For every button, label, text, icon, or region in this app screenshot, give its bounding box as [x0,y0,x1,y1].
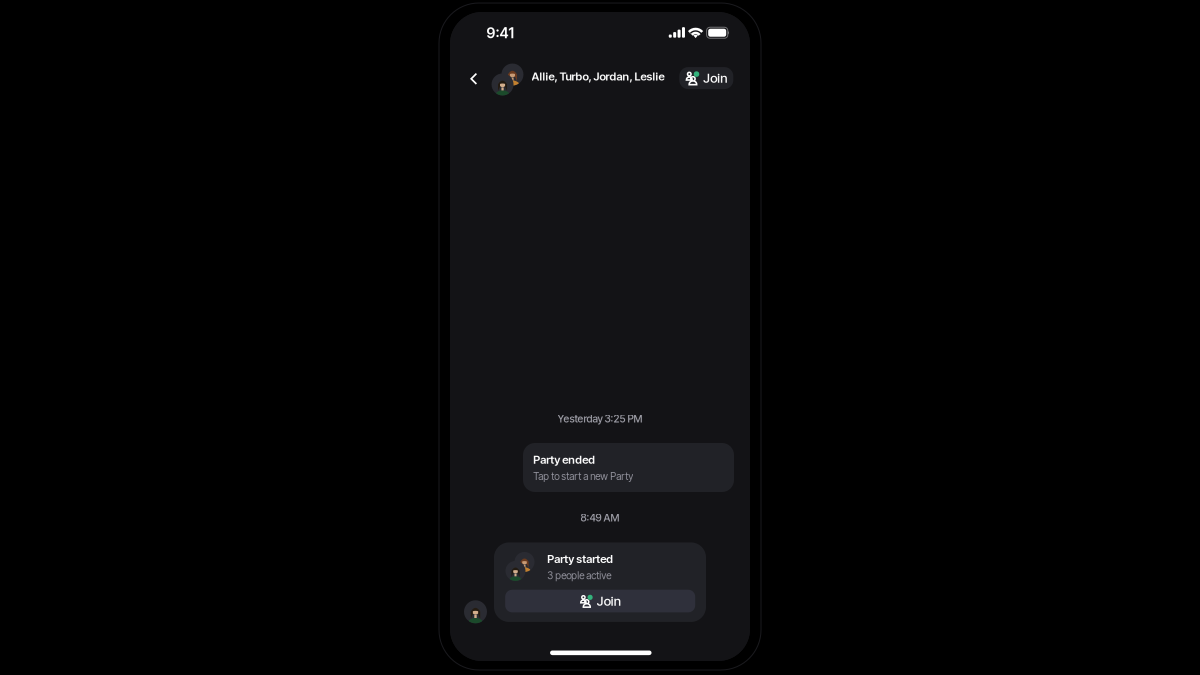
button[interactable]: Join [505,590,695,612]
staticText: Join [703,70,727,86]
staticText: Party started [547,552,613,566]
staticText: Allie, Turbo, Jordan, Leslie [532,70,665,83]
button[interactable]: Join [679,67,733,89]
staticText: Yesterday 3:25 PM [557,412,642,425]
staticText: Join [597,593,621,609]
button[interactable]: Party ended [523,443,734,492]
button[interactable]: Back [461,64,487,94]
staticText: 9:41 [486,24,514,42]
staticText: Party ended [533,453,595,466]
button[interactable]: Allie, Turbo, Jordan, Leslie [487,59,657,93]
staticText: 8:49 AM [580,511,619,524]
staticText: Tap to start a new Party [533,470,633,482]
staticText: 3 people active [547,569,611,582]
